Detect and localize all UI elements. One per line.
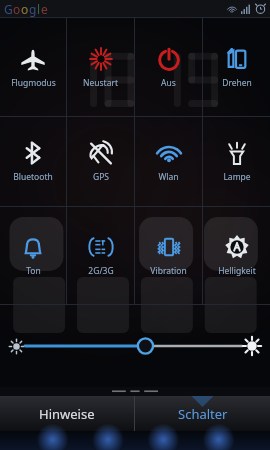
button[interactable]: Schalter xyxy=(135,396,270,431)
staticText: Aus xyxy=(161,77,176,89)
staticText: o xyxy=(13,1,21,17)
button[interactable]: Ton xyxy=(0,207,66,304)
staticText: G xyxy=(4,1,13,17)
button[interactable]: 2G/3G xyxy=(67,207,134,304)
button[interactable]: Hinweise xyxy=(0,396,134,431)
staticText: e xyxy=(41,1,48,17)
staticText: Neustart xyxy=(83,77,118,89)
staticText: o xyxy=(21,1,29,17)
button[interactable]: Flugmodus xyxy=(0,18,66,116)
staticText: 2G/3G xyxy=(88,265,114,277)
button[interactable]: Aus xyxy=(135,18,202,116)
button[interactable]: Drehen xyxy=(203,18,270,116)
staticText: Drehen xyxy=(222,77,252,89)
staticText: Wlan xyxy=(158,171,179,183)
button[interactable]: Vibration xyxy=(135,207,202,304)
button[interactable]: GPS xyxy=(67,117,134,206)
staticText: Lampe xyxy=(223,171,251,183)
button[interactable]: Bluetooth xyxy=(0,117,66,206)
staticText: Flugmodus xyxy=(11,77,56,89)
button[interactable]: Neustart xyxy=(67,18,134,116)
staticText: Schalter xyxy=(178,405,228,423)
button[interactable]: Helligkeit xyxy=(203,207,270,304)
staticText: Ton xyxy=(26,265,41,277)
staticText: GPS xyxy=(93,171,109,183)
button[interactable]: Lampe xyxy=(203,117,270,206)
button[interactable]: Wlan xyxy=(135,117,202,206)
staticText: Vibration xyxy=(150,265,187,277)
staticText: l xyxy=(37,1,41,17)
staticText: Helligkeit xyxy=(218,265,256,277)
staticText: Bluetooth xyxy=(13,171,53,183)
button[interactable]: Brightness slider xyxy=(0,305,270,387)
staticText: Hinweise xyxy=(39,405,95,423)
staticText: g xyxy=(29,1,37,17)
